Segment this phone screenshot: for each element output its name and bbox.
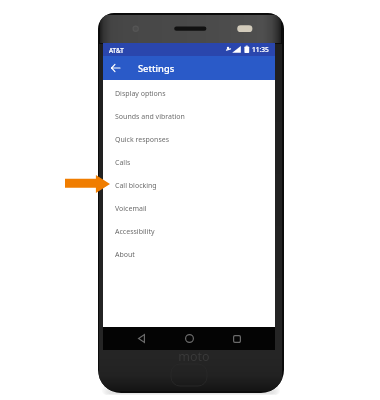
- staticText: Voicemail: [115, 204, 147, 214]
- button[interactable]: Display options: [103, 82, 275, 105]
- staticText: Quick responses: [115, 135, 170, 145]
- staticText: About: [115, 250, 135, 260]
- staticText: Accessibility: [115, 227, 155, 237]
- staticText: AT&T: [109, 46, 124, 54]
- button[interactable]: Recent apps: [213, 327, 261, 350]
- button[interactable]: Navigate up: [103, 56, 128, 80]
- button[interactable]: About: [103, 243, 275, 266]
- button[interactable]: Back: [117, 327, 165, 350]
- button[interactable]: Calls: [103, 151, 275, 174]
- staticText: 11:35: [252, 45, 269, 54]
- staticText: moto: [178, 348, 210, 365]
- staticText: Sounds and vibration: [115, 112, 185, 122]
- staticText: Call blocking: [115, 181, 157, 191]
- button[interactable]: Call blocking: [103, 174, 275, 197]
- staticText: Settings: [138, 62, 175, 75]
- button[interactable]: Home: [165, 327, 213, 350]
- button[interactable]: Quick responses: [103, 128, 275, 151]
- staticText: Calls: [115, 158, 131, 168]
- button[interactable]: Voicemail: [103, 197, 275, 220]
- button[interactable]: Sounds and vibration: [103, 105, 275, 128]
- staticText: Display options: [115, 89, 166, 99]
- button[interactable]: Accessibility: [103, 220, 275, 243]
